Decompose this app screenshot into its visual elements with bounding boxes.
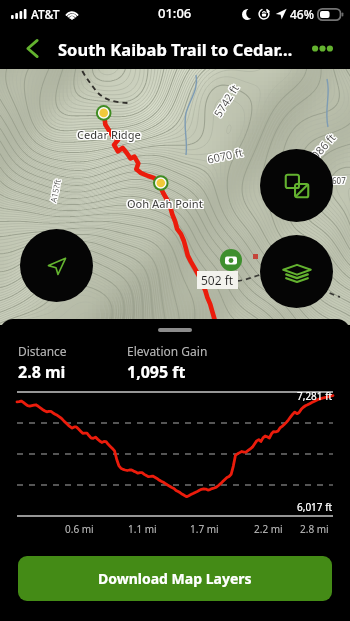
staticText: 502 ft xyxy=(201,272,234,288)
staticText: Cedar Ridge xyxy=(77,126,141,141)
staticText: 5742 ft xyxy=(209,81,241,119)
staticText: A15?ft xyxy=(47,179,63,204)
staticText: 5086 ft xyxy=(303,129,338,165)
staticText: Ooh Aah Point xyxy=(127,196,203,211)
staticText: 5742 ft xyxy=(211,82,243,120)
staticText: Cedar Ridge xyxy=(78,128,142,143)
staticText: Cedar Ridge xyxy=(77,127,141,142)
staticText: A15?ft xyxy=(48,178,64,204)
staticText: 6070 ft xyxy=(206,143,244,166)
staticText: 7,281 ft xyxy=(297,389,333,403)
staticText: Cedar Ridge xyxy=(76,126,140,141)
button[interactable]: My location xyxy=(20,229,93,302)
staticText: 2.8 mi xyxy=(18,361,66,383)
staticText: 6070 ft xyxy=(207,143,245,165)
staticText: 01:06 xyxy=(158,4,192,22)
staticText: 5086 ft xyxy=(303,130,339,167)
staticText: A15?ft xyxy=(48,177,64,203)
staticText: 1,095 ft xyxy=(127,361,186,383)
staticText: 5086 ft xyxy=(305,130,340,167)
staticText: 5742 ft xyxy=(211,80,242,119)
staticText: Ooh Aah Point xyxy=(127,197,203,212)
staticText: 5086 ft xyxy=(304,129,339,166)
staticText: A15?ft xyxy=(46,176,62,202)
staticText: Ooh Aah Point xyxy=(126,197,202,212)
staticText: AT&T xyxy=(31,6,60,22)
staticText: 2.8 mi xyxy=(300,522,329,536)
staticText: 5086 ft xyxy=(302,130,337,167)
staticText: 6070 ft xyxy=(206,145,244,168)
staticText: 607 xyxy=(333,175,347,186)
staticText: 2.2 mi xyxy=(254,522,283,536)
staticText: 607 xyxy=(333,176,347,187)
staticText: Ooh Aah Point xyxy=(128,196,204,211)
staticText: Cedar Ridge xyxy=(77,128,141,143)
staticText: A15?ft xyxy=(47,178,63,203)
staticText: Elevation Gain xyxy=(127,343,208,359)
staticText: 5742 ft xyxy=(210,81,242,120)
staticText: A15?ft xyxy=(47,177,63,202)
staticText: 5086 ft xyxy=(304,131,339,168)
staticText: 6070 ft xyxy=(207,144,245,166)
staticText: 5742 ft xyxy=(210,83,242,121)
staticText: 0.6 mi xyxy=(65,522,94,536)
staticText: South Kaibab Trail to Cedar… xyxy=(58,38,293,60)
staticText: 1.1 mi xyxy=(128,522,157,536)
staticText: Ooh Aah Point xyxy=(126,196,202,211)
button[interactable]: Compare layers xyxy=(260,149,333,222)
staticText: 5086 ft xyxy=(303,129,338,166)
staticText: Download Map Layers xyxy=(98,569,252,588)
staticText: 6070 ft xyxy=(207,145,245,167)
staticText: 5742 ft xyxy=(209,82,240,120)
button[interactable]: Map layers xyxy=(260,235,333,308)
button[interactable]: Download Map Layers xyxy=(18,556,332,601)
staticText: 607 xyxy=(331,175,345,186)
staticText: 46% xyxy=(290,6,314,22)
staticText: 6070 ft xyxy=(205,146,243,168)
staticText: Cedar Ridge xyxy=(78,127,142,142)
staticText: Cedar Ridge xyxy=(78,126,142,141)
staticText: 607 xyxy=(333,174,347,185)
staticText: Distance xyxy=(18,343,67,359)
staticText: 607 xyxy=(332,176,346,187)
staticText: 607 xyxy=(332,175,346,186)
staticText: 6070 ft xyxy=(205,145,243,167)
staticText: 5742 ft xyxy=(210,80,242,118)
staticText: A15?ft xyxy=(48,179,64,205)
staticText: Ooh Aah Point xyxy=(128,197,204,212)
staticText: 5742 ft xyxy=(211,81,243,119)
staticText: 6,017 ft xyxy=(297,500,333,514)
staticText: Ooh Aah Point xyxy=(127,195,203,210)
staticText: 5086 ft xyxy=(303,131,338,168)
staticText: 6070 ft xyxy=(205,144,243,166)
staticText: 5742 ft xyxy=(210,82,241,121)
staticText: Cedar Ridge xyxy=(76,127,140,142)
staticText: 607 xyxy=(331,174,345,185)
staticText: A15?ft xyxy=(46,178,62,204)
staticText: 607 xyxy=(332,174,346,185)
staticText: Cedar Ridge xyxy=(76,128,140,143)
staticText: 6070 ft xyxy=(206,144,244,167)
staticText: Ooh Aah Point xyxy=(128,195,204,210)
staticText: A15?ft xyxy=(46,177,62,203)
button[interactable]: Back xyxy=(0,28,58,69)
staticText: 607 xyxy=(331,176,345,187)
staticText: 5086 ft xyxy=(303,131,339,168)
staticText: 1.7 mi xyxy=(190,522,219,536)
staticText: Ooh Aah Point xyxy=(126,195,202,210)
button[interactable]: More options xyxy=(295,28,350,69)
